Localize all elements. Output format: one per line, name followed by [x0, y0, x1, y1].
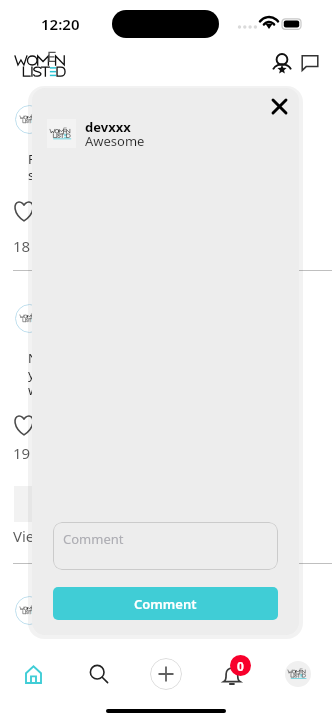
staticText: 0	[237, 658, 244, 674]
staticText: Comment	[134, 595, 197, 613]
staticText: you all, hope	[28, 365, 107, 383]
staticText: devxxx	[85, 118, 131, 136]
button[interactable]: Profile	[275, 653, 321, 695]
button[interactable]: Messages	[296, 49, 324, 77]
staticText: Nice to meet	[28, 349, 106, 367]
staticText: Comment	[63, 530, 124, 548]
button[interactable]: Search	[76, 653, 122, 695]
button[interactable]: Notifications	[214, 653, 260, 695]
staticText: 19 comments	[13, 443, 109, 463]
button[interactable]: Top creators	[268, 49, 296, 77]
button[interactable]: Comment	[53, 587, 278, 620]
button[interactable]: Close	[264, 91, 294, 121]
staticText: Awesome	[85, 132, 145, 150]
staticText: 18 comments	[13, 236, 109, 256]
staticText: View post	[13, 526, 81, 546]
staticText: Posting about	[28, 150, 114, 168]
button[interactable]: Like	[13, 414, 35, 436]
staticText: we can chat	[28, 381, 101, 399]
staticText: 12:20	[41, 14, 80, 34]
staticText: something cool	[28, 166, 123, 184]
button[interactable]: Create	[143, 653, 189, 695]
button[interactable]: Like	[13, 200, 35, 222]
button[interactable]: Comment	[53, 522, 278, 570]
button[interactable]: Home	[10, 653, 56, 695]
